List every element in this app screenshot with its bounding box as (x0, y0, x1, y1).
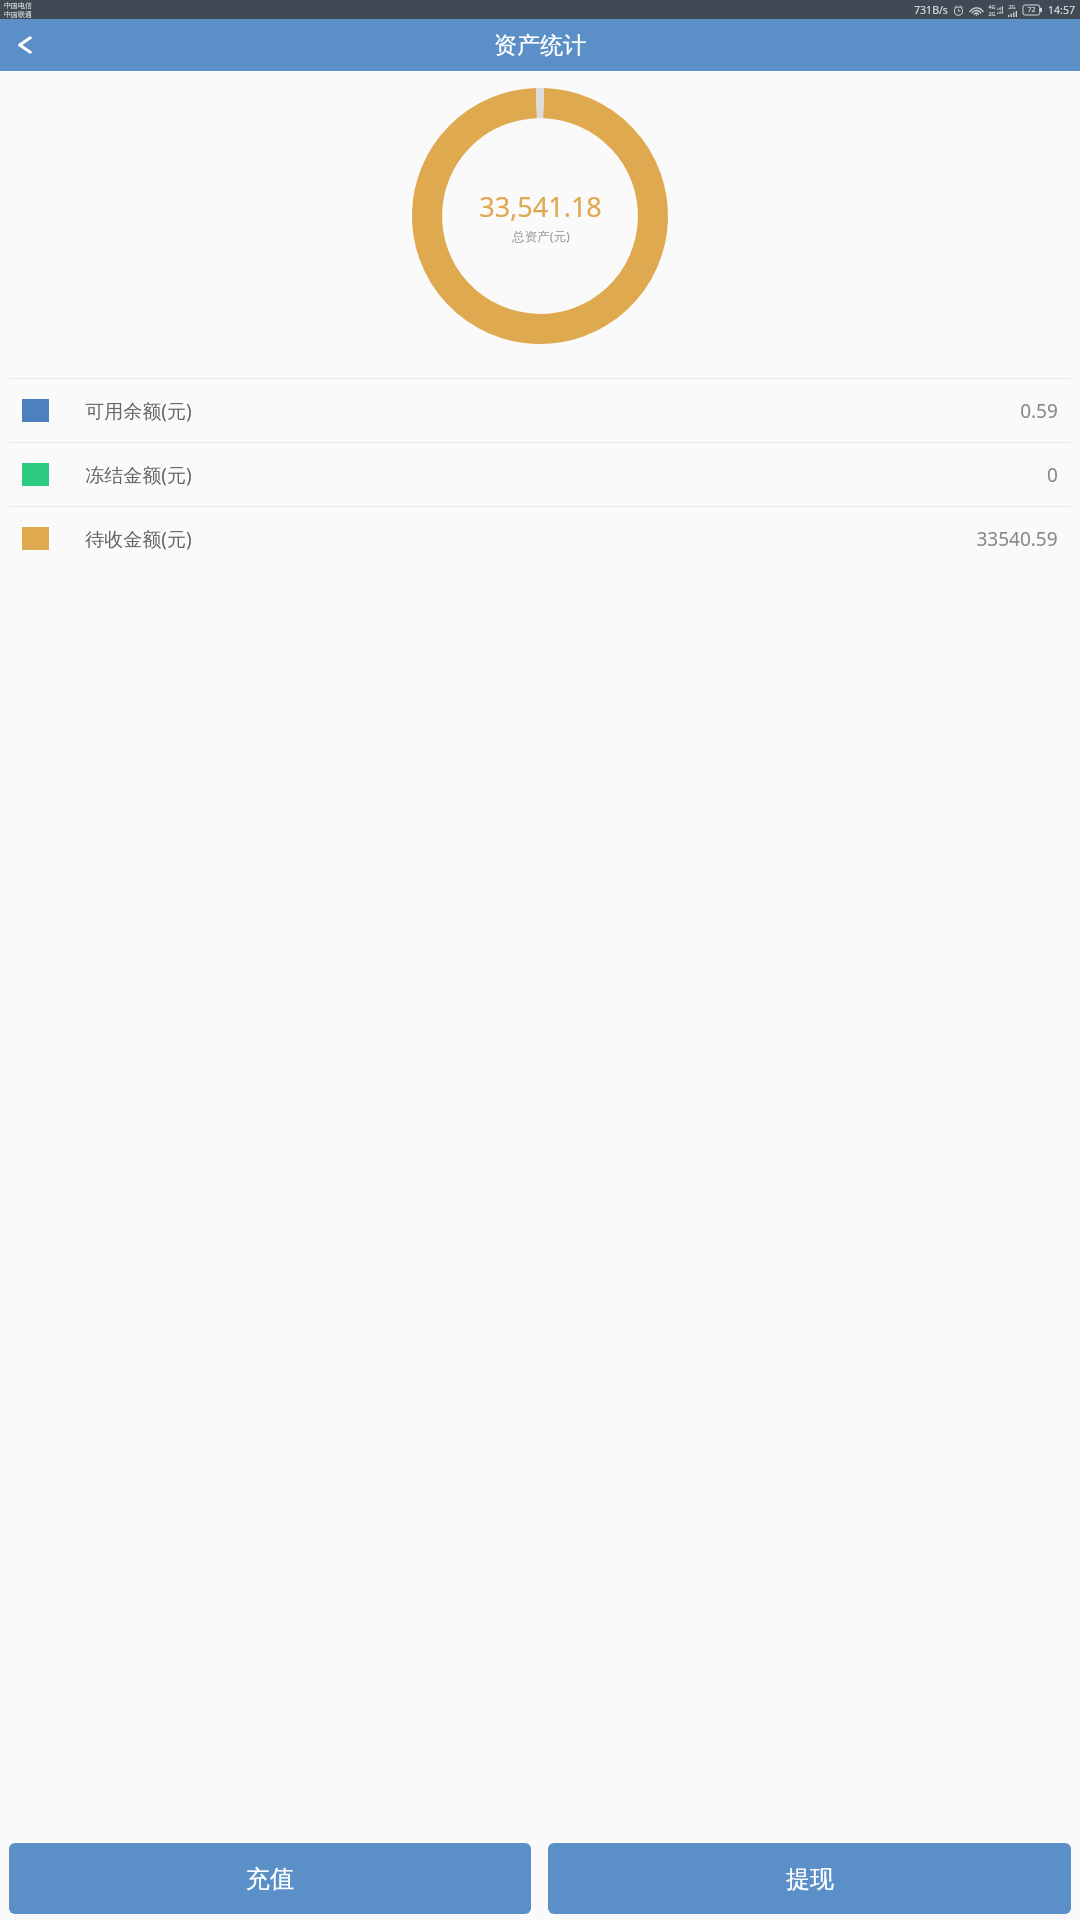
staticText: 72 (1027, 5, 1036, 15)
staticText: 资产统计 (494, 31, 586, 60)
staticText: 中国电信 (4, 1, 32, 10)
staticText: 33540.59 (976, 526, 1058, 552)
button[interactable]: 充值 (9, 1843, 531, 1914)
staticText: 2G (1008, 3, 1016, 10)
button[interactable]: 待收金额(元) (0, 507, 1080, 570)
staticText: 待收金额(元) (85, 526, 192, 552)
button[interactable]: 可用余额(元) (0, 379, 1080, 442)
staticText: 中国联通 (4, 10, 32, 19)
staticText: 4G (988, 3, 996, 10)
button[interactable]: 冻结金额(元) (0, 443, 1080, 506)
staticText: 0.59 (1020, 398, 1058, 424)
staticText: 731B/s (914, 3, 948, 17)
staticText: 冻结金额(元) (85, 462, 192, 488)
staticText: 提现 (786, 1864, 834, 1894)
staticText: 总资产(元) (512, 228, 570, 245)
button[interactable]: 返回 (0, 19, 50, 71)
staticText: 14:57 (1048, 3, 1075, 17)
staticText: 2G (988, 10, 996, 17)
staticText: 0 (1047, 462, 1058, 488)
button[interactable]: 提现 (548, 1843, 1071, 1914)
staticText: 33,541.18 (479, 188, 602, 225)
staticText: 可用余额(元) (85, 398, 192, 424)
staticText: 充值 (246, 1864, 294, 1894)
